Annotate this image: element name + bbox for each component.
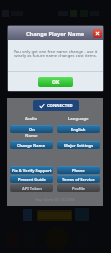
button[interactable]: OK bbox=[38, 77, 73, 87]
button[interactable]: Phone bbox=[57, 166, 100, 174]
staticText: You only get one free name change - use … bbox=[8, 49, 103, 59]
staticText: Present Guide bbox=[18, 177, 46, 182]
button[interactable]: Fix & Verify Support bbox=[10, 166, 53, 174]
button[interactable]: Profile bbox=[57, 184, 100, 192]
staticText: Major Settings bbox=[64, 143, 94, 148]
staticText: English bbox=[71, 127, 86, 132]
staticText: Language bbox=[68, 116, 89, 122]
staticText: Terms of Service bbox=[62, 177, 95, 182]
staticText: Change Name bbox=[17, 143, 46, 148]
button[interactable]: Present Guide bbox=[10, 175, 53, 183]
staticText: Audio bbox=[25, 116, 38, 122]
button[interactable]: English bbox=[57, 125, 100, 133]
staticText: Your Game ID: 0123456 bbox=[7, 197, 103, 202]
button[interactable]: API Token bbox=[10, 184, 53, 192]
staticText: API Token bbox=[22, 186, 42, 191]
button[interactable]: CONNECTED bbox=[33, 100, 79, 111]
button[interactable]: Close bbox=[93, 29, 102, 38]
staticText: Name bbox=[25, 133, 38, 139]
button[interactable]: Major Settings bbox=[57, 141, 100, 149]
button[interactable]: Terms of Service bbox=[57, 175, 100, 183]
staticText: Change Player Name bbox=[26, 30, 85, 38]
button[interactable]: Change Name bbox=[10, 141, 53, 149]
staticText: CONNECTED bbox=[47, 103, 73, 109]
staticText: Fix & Verify Support bbox=[12, 168, 52, 173]
staticText: Profile bbox=[72, 186, 86, 191]
staticText: On bbox=[29, 127, 35, 132]
staticText: OK bbox=[52, 79, 60, 86]
staticText: Phone bbox=[72, 168, 85, 173]
button[interactable]: On bbox=[10, 125, 53, 133]
